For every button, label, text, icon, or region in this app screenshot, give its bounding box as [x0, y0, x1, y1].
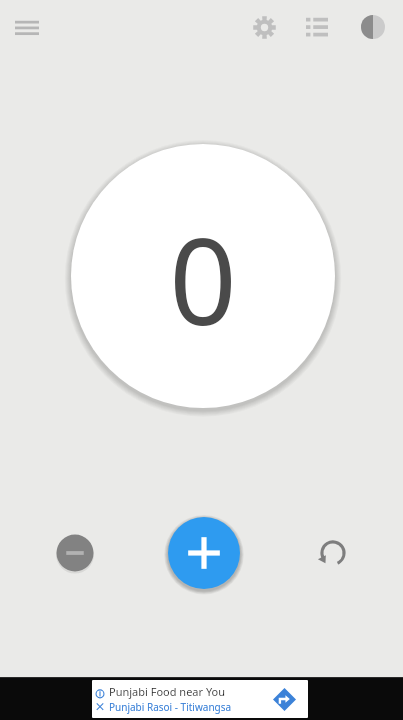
button[interactable]: Reset — [311, 531, 355, 575]
button[interactable]: Punjabi Food near You — [92, 680, 308, 718]
button[interactable]: List — [295, 5, 339, 49]
button[interactable]: 0 — [69, 142, 337, 410]
button[interactable]: Increment — [166, 515, 242, 591]
staticText: Punjabi Rasoi - Titiwangsa — [109, 700, 232, 714]
button[interactable]: Theme — [351, 5, 395, 49]
button[interactable]: Decrement — [55, 533, 95, 573]
button[interactable]: Settings — [242, 5, 286, 49]
staticText: 0 — [169, 199, 237, 360]
button[interactable]: Menu — [5, 5, 49, 49]
staticText: Punjabi Food near You — [109, 684, 226, 699]
